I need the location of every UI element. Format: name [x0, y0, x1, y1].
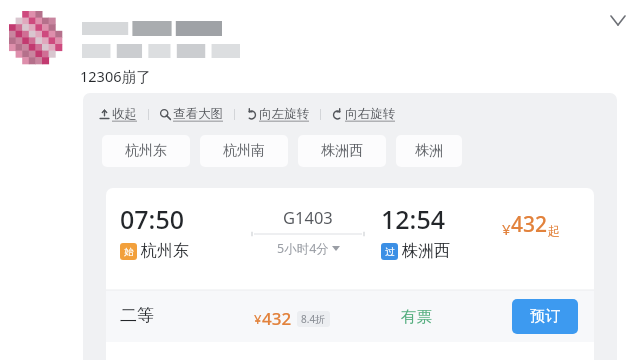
button[interactable]: 株洲	[396, 135, 462, 167]
staticText: 8.4折	[301, 312, 326, 326]
staticText: ¥	[254, 310, 262, 328]
staticText: 432	[511, 210, 548, 239]
staticText: 杭州东	[125, 142, 167, 160]
button[interactable]: 杭州东	[102, 135, 190, 167]
staticText: 始	[124, 246, 134, 258]
staticText: 杭州东	[141, 241, 189, 261]
button[interactable]: Collapse	[602, 4, 634, 36]
staticText: 杭州南	[223, 142, 265, 160]
staticText: 有票	[401, 307, 432, 327]
staticText: 株洲西	[402, 241, 450, 261]
button[interactable]: 查看大图	[158, 106, 225, 122]
staticText: 二等	[120, 305, 154, 326]
staticText: 12306崩了	[80, 66, 151, 86]
staticText: 收起	[112, 106, 137, 122]
staticText: 株洲西	[321, 142, 363, 160]
staticText: 过	[385, 246, 395, 258]
staticText: 株洲	[415, 142, 443, 160]
button[interactable]: 07:50	[106, 188, 594, 360]
staticText: G1403	[283, 206, 333, 228]
button[interactable]: 预订	[512, 299, 578, 334]
button[interactable]: 向右旋转	[330, 106, 397, 122]
staticText: 5小时4分	[277, 240, 329, 257]
button[interactable]: 杭州南	[200, 135, 288, 167]
staticText: ¥	[502, 219, 511, 239]
button[interactable]: 向左旋转	[244, 106, 311, 122]
staticText: 预订	[530, 307, 560, 326]
staticText: 查看大图	[173, 106, 223, 122]
staticText: 起	[548, 223, 560, 238]
button[interactable]: 株洲西	[298, 135, 386, 167]
staticText: 432	[262, 307, 292, 330]
staticText: 07:50	[120, 202, 185, 236]
staticText: 向左旋转	[259, 106, 309, 122]
button[interactable]: 5小时4分	[277, 240, 340, 257]
button[interactable]: 收起	[97, 106, 139, 122]
staticText: 12:54	[381, 202, 446, 236]
staticText: 向右旋转	[345, 106, 395, 122]
